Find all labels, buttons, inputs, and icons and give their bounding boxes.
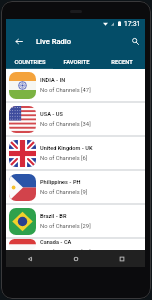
button[interactable]: COUNTRIES	[6, 55, 53, 69]
button[interactable]: United Kingdom - UK	[6, 137, 145, 169]
button[interactable]: Search	[126, 28, 145, 55]
button[interactable]: USA - US	[6, 103, 145, 135]
button[interactable]: Recents	[99, 250, 145, 267]
staticText: RECENT	[111, 59, 133, 66]
staticText: Brazil - BR	[40, 213, 67, 220]
staticText: No of Channels [34]	[40, 121, 91, 128]
button[interactable]: Back	[6, 28, 31, 55]
staticText: FAVORITE	[63, 59, 90, 66]
staticText: United Kingdom - UK	[40, 145, 93, 152]
button[interactable]: INDIA - IN	[6, 69, 145, 101]
button[interactable]: Philippines - PH	[6, 171, 145, 203]
button[interactable]: Canada - CA	[6, 239, 145, 250]
staticText: No of Channels [47]	[40, 87, 91, 94]
staticText: Canada - CA	[40, 239, 72, 246]
button[interactable]: Home	[53, 250, 99, 267]
staticText: No of Channels [6]	[40, 155, 88, 162]
staticText: Live Radio	[36, 37, 72, 46]
staticText: INDIA - IN	[40, 77, 66, 84]
staticText: USA - US	[40, 111, 64, 118]
button[interactable]: RECENT	[99, 55, 145, 69]
staticText: COUNTRIES	[14, 59, 46, 66]
staticText: No of Channels [9]	[40, 189, 88, 196]
button[interactable]: FAVORITE	[53, 55, 99, 69]
button[interactable]: Brazil - BR	[6, 205, 145, 237]
staticText: No of Channels [21]	[40, 249, 91, 250]
button[interactable]: Back	[6, 250, 53, 267]
staticText: 17:31	[124, 20, 141, 28]
staticText: Philippines - PH	[40, 179, 81, 186]
staticText: No of Channels [29]	[40, 223, 91, 230]
